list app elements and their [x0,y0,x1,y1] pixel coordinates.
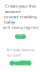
staticText: and save progress [2,25,38,30]
button[interactable]: Sign up [15,34,26,39]
staticText: to start tracking today [4,14,37,25]
staticText: Already have an account? [6,47,34,58]
staticText: Sign up [16,31,25,42]
staticText: Create your free account [5,3,36,14]
button[interactable]: Get Started [9,61,31,66]
staticText: Get Started [13,58,28,68]
